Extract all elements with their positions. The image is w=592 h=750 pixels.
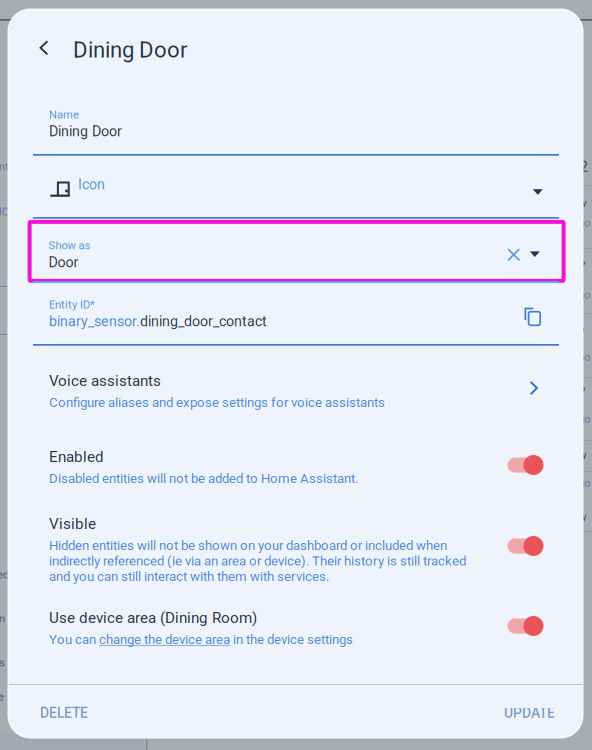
staticText: change the device area bbox=[99, 632, 230, 647]
staticText: Name bbox=[49, 108, 79, 121]
staticText: Hidden entities will not be shown on you… bbox=[49, 538, 466, 584]
staticText: DELETE bbox=[40, 705, 88, 721]
staticText: s bbox=[0, 656, 5, 669]
staticText: Use device area (Dining Room) bbox=[49, 609, 257, 627]
button[interactable]: Use device area (Dining Room) bbox=[33, 592, 559, 652]
button[interactable]: DELETE bbox=[31, 696, 97, 730]
staticText: Visible bbox=[49, 515, 96, 533]
staticText: P bbox=[578, 258, 585, 271]
button[interactable]: Enabled bbox=[33, 431, 559, 492]
staticText: Entity ID* bbox=[49, 298, 95, 311]
staticText: no bbox=[578, 288, 591, 301]
staticText: w bbox=[578, 448, 587, 461]
staticText: ed bbox=[0, 568, 9, 581]
staticText: UPDATE bbox=[504, 705, 555, 721]
button[interactable]: Icon bbox=[33, 155, 559, 218]
button[interactable]: UPDATE bbox=[495, 696, 564, 730]
staticText: Dining Door bbox=[49, 123, 122, 140]
staticText: nt bbox=[0, 160, 9, 173]
staticText: binary_sensor. bbox=[49, 313, 140, 330]
staticText: P bbox=[578, 384, 585, 397]
staticText: 2 bbox=[580, 159, 588, 175]
button[interactable]: Voice assistants bbox=[33, 355, 559, 417]
staticText: b bbox=[578, 322, 584, 335]
staticText: e bbox=[0, 690, 4, 703]
staticText: Enabled bbox=[49, 448, 104, 466]
staticText: Door bbox=[49, 254, 79, 271]
staticText: You can bbox=[49, 632, 99, 647]
staticText: n bbox=[0, 612, 5, 625]
staticText: no bbox=[578, 476, 591, 489]
staticText: IC bbox=[0, 205, 9, 218]
staticText: Voice assistants bbox=[49, 372, 161, 390]
staticText: Disabled entities will not be added to H… bbox=[49, 471, 358, 486]
staticText: no bbox=[578, 412, 591, 425]
staticText: w bbox=[578, 196, 587, 209]
button[interactable]: Visible bbox=[33, 498, 559, 596]
button[interactable]: Show as bbox=[30, 222, 564, 286]
button[interactable]: Back bbox=[24, 28, 64, 68]
staticText: no bbox=[578, 216, 591, 229]
staticText: w bbox=[578, 510, 587, 523]
staticText: dining_door_contact bbox=[140, 313, 267, 330]
staticText: Dining Door bbox=[73, 37, 188, 63]
staticText: in the device settings bbox=[230, 632, 353, 647]
staticText: Show as bbox=[49, 239, 91, 252]
staticText: Configure aliases and expose settings fo… bbox=[49, 395, 385, 410]
staticText: no bbox=[578, 350, 591, 363]
button[interactable]: Entity ID* bbox=[33, 284, 559, 345]
staticText: Icon bbox=[78, 176, 105, 193]
button[interactable]: Name bbox=[33, 101, 559, 157]
